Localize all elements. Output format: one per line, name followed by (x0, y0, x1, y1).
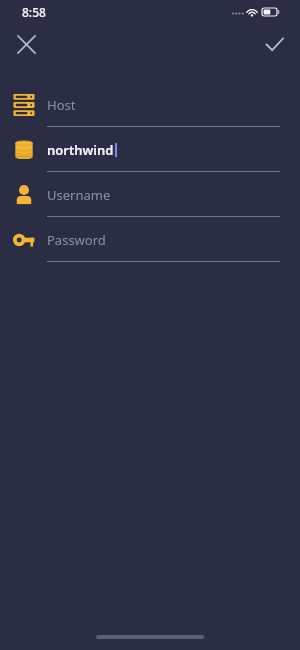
button[interactable]: Host (0, 82, 300, 127)
staticText: Host (47, 96, 76, 114)
button[interactable]: Close (6, 24, 46, 64)
button[interactable]: Save (254, 24, 294, 64)
staticText: Username (47, 186, 111, 204)
staticText: northwind (47, 141, 114, 159)
staticText: 8:58 (22, 4, 46, 20)
button[interactable]: Username (0, 172, 300, 217)
button[interactable]: northwind (0, 127, 300, 172)
staticText: Password (47, 231, 106, 249)
button[interactable]: Password (0, 217, 300, 262)
